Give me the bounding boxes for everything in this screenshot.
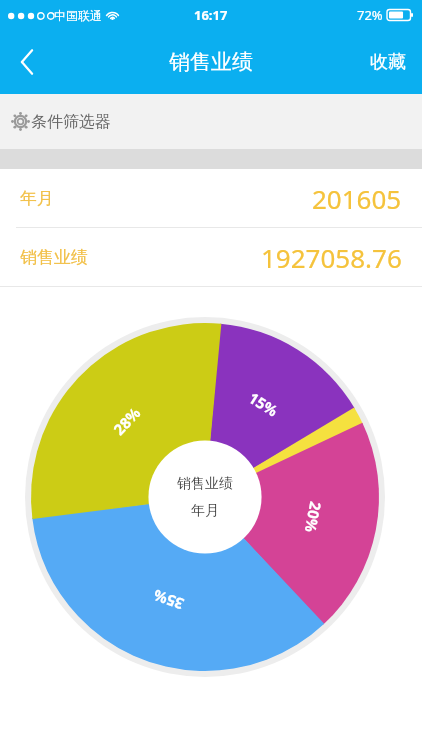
button[interactable]: 收藏 <box>354 30 422 94</box>
staticText: 201605 <box>312 181 402 216</box>
button[interactable]: 条件筛选器 <box>0 94 422 149</box>
staticText: 收藏 <box>370 51 406 74</box>
staticText: 条件筛选器 <box>31 112 111 132</box>
staticText: 15% <box>245 387 282 421</box>
staticText: 72% <box>357 6 383 24</box>
staticText: 35% <box>150 585 186 615</box>
button[interactable]: Back <box>0 30 54 94</box>
staticText: 1927058.76 <box>261 240 402 275</box>
staticText: 28% <box>108 403 144 439</box>
staticText: 销售业绩 <box>169 49 253 75</box>
staticText: 年月 <box>191 502 219 520</box>
staticText: 销售业绩 <box>20 247 88 268</box>
staticText: 年月 <box>20 188 54 209</box>
staticText: 20% <box>301 500 326 534</box>
staticText: 中国联通 <box>54 8 102 23</box>
staticText: 16:17 <box>194 6 228 24</box>
staticText: 销售业绩 <box>177 475 233 493</box>
button[interactable]: 年月 <box>0 169 422 227</box>
button[interactable]: 销售业绩 <box>0 228 422 286</box>
